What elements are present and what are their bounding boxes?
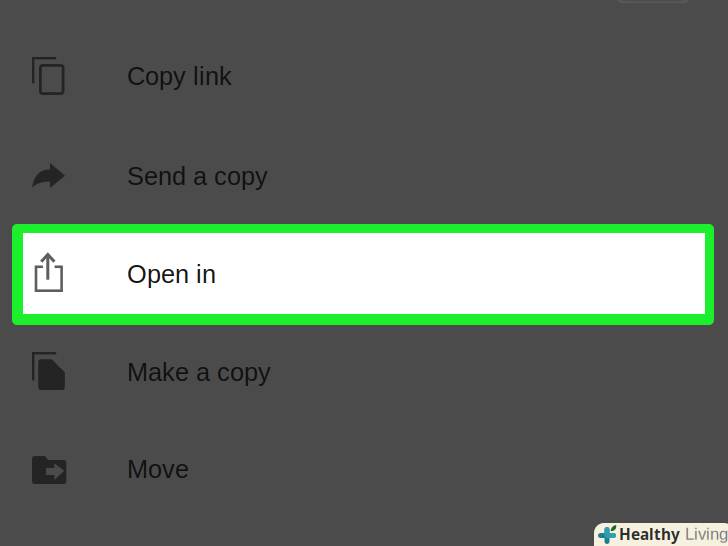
staticText: Make a copy [127,358,271,386]
button[interactable]: Move [0,0,728,98]
button[interactable]: Open in [0,0,702,101]
staticText: Copy link [127,62,232,90]
staticText: Living [680,525,728,543]
staticText: Move [127,455,189,483]
button[interactable]: Make a copy [0,0,728,98]
button[interactable]: Copy link [0,0,728,98]
staticText: Open in [127,260,216,288]
button[interactable]: Send a copy [0,0,728,98]
staticText: Healthy [619,523,680,544]
staticText: Send a copy [127,162,268,190]
